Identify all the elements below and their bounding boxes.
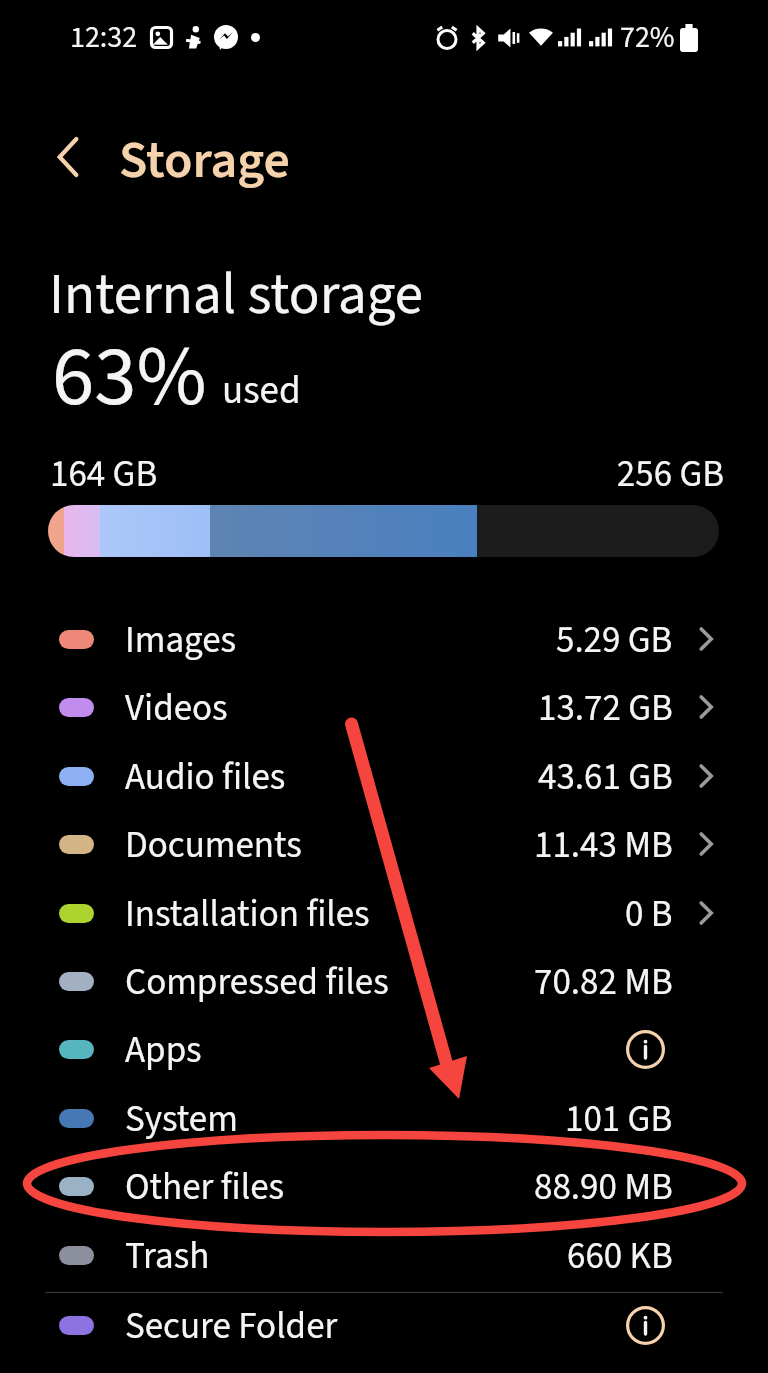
button[interactable]: Audio files [0, 742, 768, 810]
staticText: 12:32 [70, 16, 138, 59]
staticText: Secure Folder [125, 1300, 338, 1353]
button[interactable]: Back [38, 127, 98, 187]
staticText: Internal storage [49, 255, 424, 336]
staticText: 43.61 GB [538, 751, 673, 804]
button[interactable]: Installation files [0, 879, 768, 947]
staticText: 11.43 MB [534, 819, 673, 872]
button[interactable]: Secure Folder [0, 1291, 768, 1359]
button[interactable]: Compressed files [0, 947, 768, 1015]
button[interactable]: Info [617, 1021, 673, 1077]
button[interactable]: Info [617, 1297, 673, 1353]
staticText: 5.29 GB [556, 614, 673, 667]
button[interactable]: Apps [0, 1015, 768, 1083]
staticText: 13.72 GB [538, 682, 673, 735]
staticText: 256 GB [0, 448, 724, 501]
staticText: System [125, 1093, 238, 1146]
staticText: Installation files [125, 888, 370, 941]
button[interactable]: Videos [0, 673, 768, 741]
staticText: used [222, 363, 301, 419]
staticText: Trash [125, 1230, 210, 1283]
staticText: Documents [125, 819, 302, 872]
staticText: Compressed files [125, 956, 389, 1009]
staticText: 70.82 MB [534, 956, 673, 1009]
staticText: Videos [125, 682, 228, 735]
staticText: Apps [125, 1024, 202, 1077]
staticText: 164 GB [50, 448, 158, 501]
staticText: Images [125, 614, 237, 667]
staticText: 88.90 MB [534, 1161, 673, 1214]
staticText: 101 GB [565, 1093, 673, 1146]
staticText: 0 B [625, 888, 673, 941]
staticText: Storage [119, 124, 290, 198]
button[interactable]: Trash [0, 1221, 768, 1289]
button[interactable]: Other files [0, 1152, 768, 1220]
staticText: 72% [620, 16, 675, 59]
staticText: Audio files [125, 751, 286, 804]
staticText: Other files [125, 1161, 284, 1214]
staticText: 660 KB [567, 1230, 673, 1283]
staticText: 63% [52, 317, 207, 438]
button[interactable]: Documents [0, 810, 768, 878]
button[interactable]: System [0, 1084, 768, 1152]
button[interactable]: Images [0, 605, 768, 673]
